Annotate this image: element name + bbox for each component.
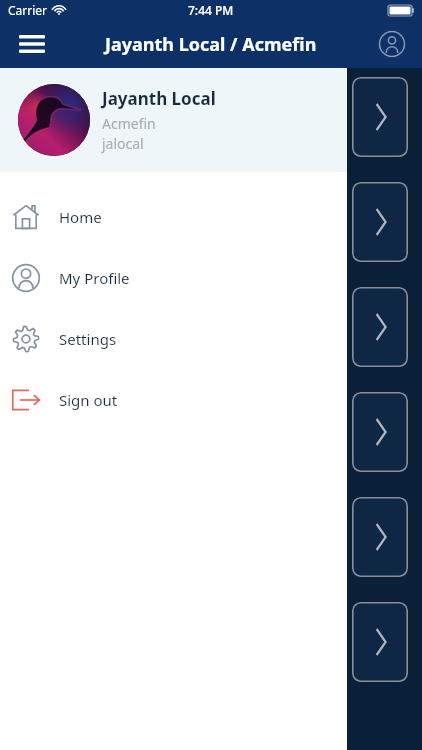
button[interactable]: Open item (352, 602, 408, 682)
staticText: 7:44 PM (188, 2, 234, 18)
button[interactable]: Open item (352, 77, 408, 157)
button[interactable]: Open item (352, 287, 408, 367)
staticText: Jayanth Local / Acmefin (105, 32, 317, 57)
staticText: Sign out (59, 390, 118, 410)
staticText: Jayanth Local (102, 87, 216, 110)
button[interactable]: Account (374, 26, 410, 62)
button[interactable]: Settings (0, 308, 347, 369)
staticText: Carrier (8, 2, 48, 18)
staticText: My Profile (59, 268, 130, 288)
staticText: Home (59, 207, 102, 227)
button[interactable]: Open item (352, 182, 408, 262)
staticText: Settings (59, 329, 117, 349)
button[interactable]: Sign out (0, 369, 347, 430)
staticText: jalocal (102, 134, 144, 153)
button[interactable]: Jayanth Local (0, 68, 347, 172)
button[interactable]: My Profile (0, 247, 347, 308)
staticText: Acmefin (102, 114, 156, 133)
button[interactable]: Open item (352, 497, 408, 577)
button[interactable]: Open navigation menu (12, 24, 52, 64)
button[interactable]: Open item (352, 392, 408, 472)
button[interactable]: Home (0, 186, 347, 247)
